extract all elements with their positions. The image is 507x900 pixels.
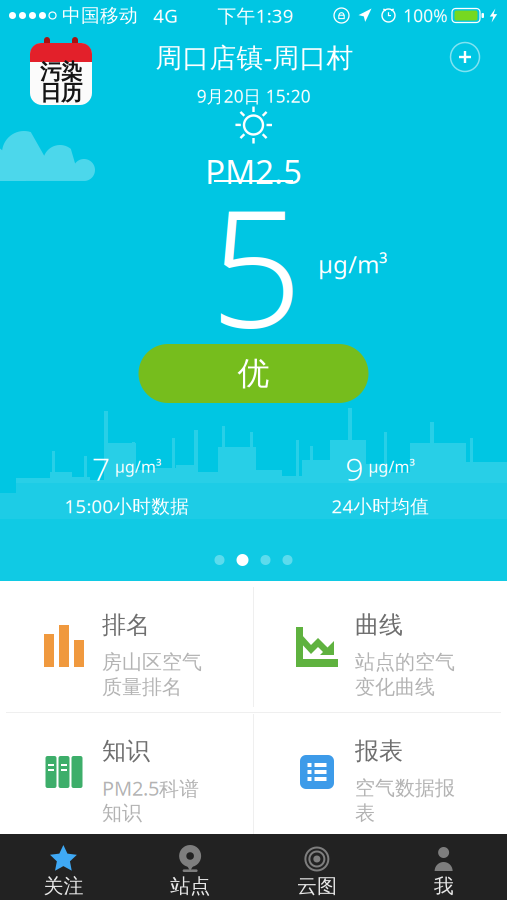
staticText: 污染: [40, 59, 82, 85]
staticText: 周口店镇-周口村: [155, 39, 353, 75]
staticText: 云图: [297, 874, 337, 898]
button[interactable]: 污染日历: [30, 36, 92, 105]
staticText: 质量排名: [102, 675, 182, 699]
staticText: 表: [355, 801, 375, 825]
button[interactable]: 云图: [253, 834, 380, 900]
staticText: µg/m³: [115, 456, 162, 477]
staticText: PM2.5: [205, 149, 302, 193]
button[interactable]: 知识: [0, 707, 253, 833]
button[interactable]: 排名: [0, 581, 253, 707]
staticText: PM2.5科谱: [102, 775, 199, 801]
button[interactable]: 报表: [253, 707, 506, 833]
staticText: 5: [209, 156, 302, 372]
staticText: 优: [237, 354, 269, 393]
staticText: 下午1:39: [217, 3, 293, 28]
staticText: 9月20日 15:20: [196, 84, 310, 107]
staticText: 站点的空气: [355, 650, 455, 674]
button[interactable]: PM2.5: [0, 149, 507, 187]
staticText: 100%: [403, 4, 447, 27]
staticText: 房山区空气: [102, 650, 202, 674]
staticText: 曲线: [355, 610, 403, 640]
staticText: 7: [92, 447, 110, 489]
staticText: 知识: [102, 736, 150, 766]
staticText: 15:00小时数据: [64, 493, 189, 518]
button[interactable]: 关注: [0, 834, 127, 900]
staticText: 4G: [138, 3, 178, 28]
staticText: 我: [434, 874, 454, 898]
staticText: 日历: [40, 80, 82, 106]
button[interactable]: 添加站点: [445, 37, 485, 77]
button[interactable]: 我: [380, 834, 507, 900]
button[interactable]: 曲线: [253, 581, 506, 707]
staticText: 站点: [170, 874, 210, 898]
staticText: 知识: [102, 801, 142, 825]
button[interactable]: 优: [138, 344, 368, 403]
staticText: 中国移动: [62, 4, 138, 27]
staticText: µg/m³: [368, 456, 415, 477]
staticText: 空气数据报: [355, 776, 455, 800]
staticText: 报表: [355, 736, 403, 766]
staticText: 变化曲线: [355, 675, 435, 699]
staticText: 排名: [102, 610, 150, 640]
staticText: 24小时均值: [331, 493, 429, 518]
staticText: 9: [345, 447, 363, 489]
button[interactable]: 站点: [127, 834, 254, 900]
staticText: µg/m³: [318, 248, 387, 280]
staticText: 关注: [43, 874, 83, 898]
